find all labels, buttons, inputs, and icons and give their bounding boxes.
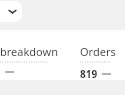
- button[interactable]: Expand date range: [0, 1, 22, 22]
- staticText: breakdown: [0, 44, 58, 59]
- staticText: Orders: [80, 44, 116, 59]
- button[interactable]: breakdown: [0, 30, 125, 80]
- staticText: 819: [80, 67, 98, 80]
